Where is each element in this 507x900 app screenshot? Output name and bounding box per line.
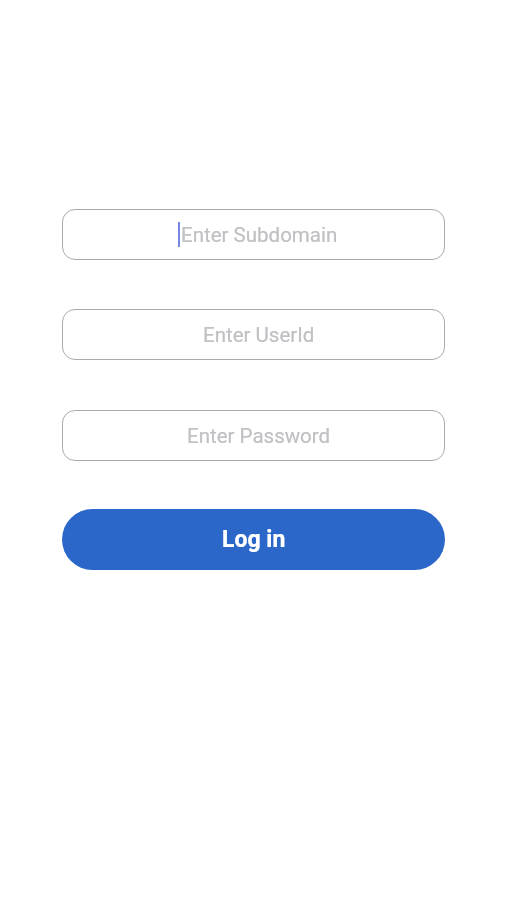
button[interactable]: Enter Password [62, 410, 445, 461]
staticText: Enter Password [187, 424, 331, 448]
button[interactable]: Enter UserId [62, 309, 445, 360]
staticText: Enter UserId [203, 323, 315, 347]
staticText: Log in [222, 526, 286, 553]
button[interactable]: Enter Subdomain [62, 209, 445, 260]
staticText: Enter Subdomain [181, 223, 338, 247]
button[interactable]: Log in [62, 509, 445, 570]
